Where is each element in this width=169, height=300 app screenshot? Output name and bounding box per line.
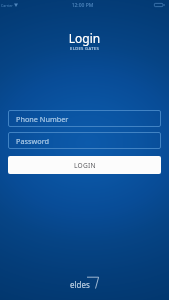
staticText: Login (0, 30, 169, 46)
staticText: Password (16, 136, 50, 146)
staticText: ELDES GATES (0, 46, 169, 52)
staticText: Phone Number (16, 114, 69, 124)
staticText: Carrier (1, 3, 13, 8)
button[interactable]: Password (8, 132, 161, 149)
staticText: 12:00 PM (0, 2, 167, 9)
button[interactable]: LOGIN (8, 156, 161, 174)
staticText: LOGIN (74, 161, 96, 170)
staticText: eldes (70, 279, 90, 290)
button[interactable]: Phone Number (8, 110, 161, 127)
